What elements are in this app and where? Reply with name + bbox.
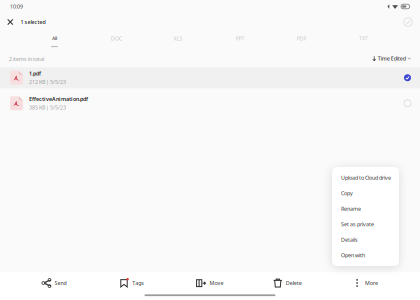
staticText: Tags [132, 279, 144, 287]
button[interactable]: Rename [332, 201, 399, 216]
button[interactable]: Details [332, 232, 399, 247]
button[interactable]: EffectiveAnimation.pdf [0, 90, 420, 116]
button[interactable]: Copy [332, 185, 399, 201]
button[interactable]: Tags [93, 272, 171, 294]
staticText: Delete [286, 279, 302, 287]
staticText: Send [54, 279, 66, 287]
button[interactable]: Delete [248, 272, 326, 294]
staticText: XLS [174, 35, 183, 42]
button[interactable]: XLS [147, 31, 209, 49]
button[interactable]: Time Edited [372, 49, 420, 65]
staticText: All [52, 35, 57, 42]
staticText: Time Edited [378, 55, 406, 62]
staticText: DOC [111, 35, 122, 42]
staticText: Open with [341, 252, 365, 259]
button[interactable]: Upload to Cloud drive [332, 170, 399, 185]
staticText: PPT [235, 35, 244, 42]
staticText: Upload to Cloud drive [341, 174, 391, 181]
button[interactable]: TXT [333, 31, 394, 49]
button[interactable]: Set as private [332, 216, 399, 232]
staticText: Move [209, 279, 223, 287]
button[interactable]: More [326, 272, 404, 294]
button[interactable]: Send [15, 272, 93, 294]
staticText: 212 KB | 5/5/23 [29, 78, 66, 86]
staticText: PDF [297, 35, 307, 42]
button[interactable]: 1.pdf [0, 65, 420, 90]
staticText: Set as private [341, 221, 374, 228]
staticText: TXT [359, 35, 368, 42]
staticText: Copy [341, 190, 353, 197]
staticText: Details [341, 236, 358, 243]
button[interactable]: PDF [271, 31, 333, 49]
button[interactable]: PPT [209, 31, 271, 49]
button[interactable]: DOC [85, 31, 147, 49]
staticText: 2 items in total [9, 55, 44, 63]
staticText: 1 selected [21, 18, 46, 26]
staticText: More [365, 279, 378, 287]
staticText: 385 KB | 5/5/23 [29, 104, 66, 111]
staticText: Rename [341, 205, 361, 212]
button[interactable]: Move [171, 272, 248, 294]
button[interactable]: Select all [398, 13, 418, 31]
staticText: 10:09 [10, 3, 23, 10]
button[interactable]: Close [2, 13, 19, 31]
staticText: 1.pdf [29, 70, 41, 77]
staticText: EffectiveAnimation.pdf [29, 95, 88, 102]
button[interactable]: All [24, 31, 85, 49]
button[interactable]: Open with [332, 247, 399, 263]
